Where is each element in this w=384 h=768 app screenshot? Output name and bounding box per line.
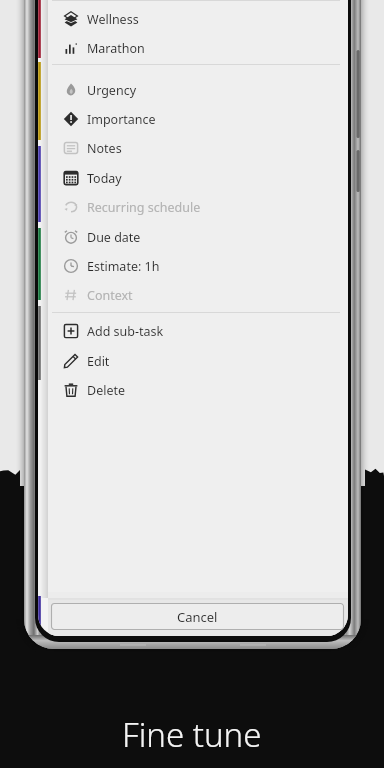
- staticText: Marathon: [87, 40, 145, 57]
- button[interactable]: Recurring schedule: [48, 193, 348, 221]
- staticText: Today: [87, 170, 122, 187]
- button[interactable]: Add sub-task: [48, 317, 348, 345]
- button[interactable]: Context: [48, 281, 348, 309]
- button[interactable]: Marathon: [48, 34, 348, 62]
- button[interactable]: Estimate: 1h: [48, 252, 348, 280]
- button[interactable]: Due date: [48, 223, 348, 251]
- button[interactable]: Notes: [48, 134, 348, 162]
- staticText: Delete: [87, 382, 126, 399]
- staticText: Due date: [87, 229, 141, 246]
- button[interactable]: Edit: [48, 347, 348, 375]
- staticText: Edit: [87, 353, 110, 370]
- button[interactable]: Importance: [48, 105, 348, 133]
- staticText: Wellness: [87, 11, 139, 28]
- staticText: Urgency: [87, 82, 137, 99]
- staticText: Importance: [87, 111, 156, 128]
- button[interactable]: Cancel: [51, 603, 344, 630]
- button[interactable]: Wellness: [48, 5, 348, 33]
- staticText: Estimate: 1h: [87, 258, 160, 275]
- staticText: Context: [87, 287, 133, 304]
- staticText: Notes: [87, 140, 122, 157]
- button[interactable]: Delete: [48, 376, 348, 404]
- staticText: Add sub-task: [87, 323, 164, 340]
- staticText: Fine tune: [122, 712, 262, 757]
- button[interactable]: Today: [48, 164, 348, 192]
- button[interactable]: Urgency: [48, 76, 348, 104]
- staticText: Cancel: [177, 608, 218, 626]
- staticText: Recurring schedule: [87, 199, 201, 216]
